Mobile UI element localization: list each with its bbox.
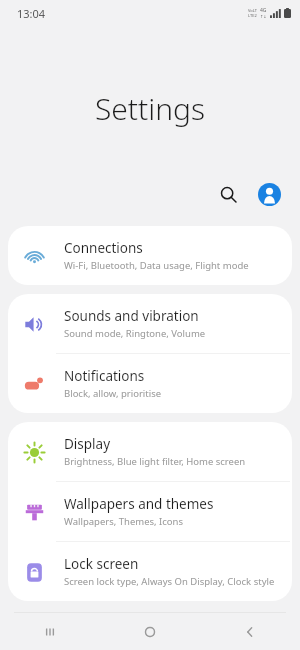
button[interactable]: Notifications: [8, 354, 292, 413]
staticText: Connections: [64, 239, 143, 257]
button[interactable]: Display: [8, 422, 292, 481]
staticText: 13:04: [17, 6, 46, 21]
button[interactable]: Wallpapers and themes: [8, 482, 292, 541]
staticText: LTE2: [248, 13, 257, 18]
staticText: Lock screen: [64, 555, 139, 573]
button[interactable]: Back: [200, 613, 300, 650]
staticText: ↑↓: [260, 14, 267, 19]
button[interactable]: Sounds and vibration: [8, 294, 292, 353]
staticText: Display: [64, 435, 111, 453]
staticText: Brightness, Blue light filter, Home scre…: [64, 455, 246, 468]
staticText: Wi-Fi, Bluetooth, Data usage, Flight mod…: [64, 259, 249, 272]
staticText: Wallpapers and themes: [64, 495, 214, 513]
staticText: Notifications: [64, 367, 145, 385]
staticText: VoLT: [248, 8, 257, 13]
staticText: Sounds and vibration: [64, 307, 199, 325]
button[interactable]: Recents: [0, 613, 100, 650]
staticText: Sound mode, Ringtone, Volume: [64, 327, 206, 340]
button[interactable]: Home: [100, 613, 200, 650]
button[interactable]: Search: [211, 177, 245, 211]
staticText: Wallpapers, Themes, Icons: [64, 515, 184, 528]
button[interactable]: Connections: [8, 226, 292, 285]
staticText: Screen lock type, Always On Display, Clo…: [64, 575, 275, 588]
button[interactable]: Lock screen: [8, 542, 292, 601]
staticText: 4G: [260, 7, 267, 14]
staticText: Block, allow, prioritise: [64, 387, 162, 400]
staticText: Settings: [0, 88, 300, 129]
button[interactable]: Account: [252, 177, 286, 211]
